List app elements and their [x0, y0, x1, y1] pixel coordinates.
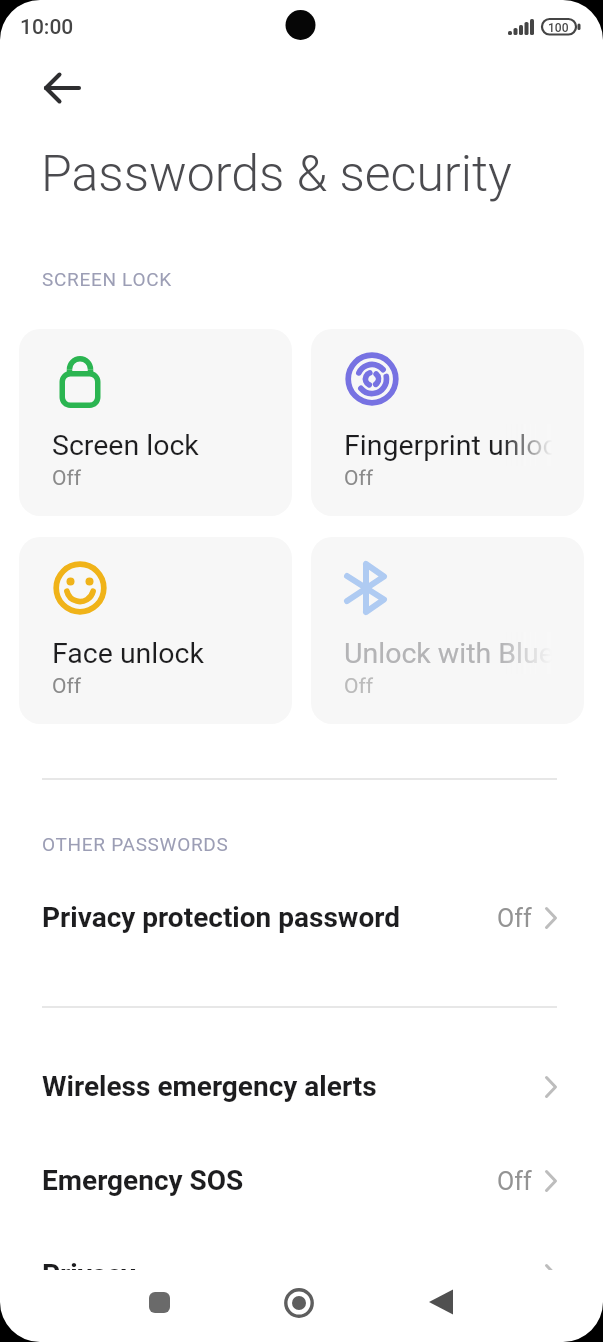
staticText: SCREEN LOCK: [42, 268, 172, 290]
staticText: Off: [344, 466, 374, 491]
staticText: Privacy protection password: [42, 901, 401, 934]
button[interactable]: Privacy: [0, 1230, 603, 1320]
button[interactable]: Wireless emergency alerts: [0, 1042, 603, 1132]
button[interactable]: Face unlock: [19, 537, 292, 724]
staticText: Off: [497, 1167, 532, 1196]
staticText: Unlock with Bluetooth device: [344, 637, 584, 670]
staticText: Emergency SOS: [42, 1164, 244, 1197]
staticText: Off: [52, 466, 82, 491]
staticText: Screen lock: [52, 429, 292, 462]
staticText: Off: [497, 904, 532, 933]
staticText: 10:00: [20, 15, 74, 40]
button[interactable]: Unlock with Bluetooth device: [311, 537, 584, 724]
staticText: Off: [52, 674, 82, 699]
staticText: OTHER PASSWORDS: [42, 833, 229, 855]
button[interactable]: Fingerprint unlock: [311, 329, 584, 516]
staticText: Privacy: [42, 1258, 136, 1291]
button[interactable]: [408, 1277, 472, 1329]
button[interactable]: Privacy protection password: [0, 873, 603, 963]
staticText: Passwords & security: [41, 145, 512, 204]
staticText: Face unlock: [52, 637, 292, 670]
staticText: Wireless emergency alerts: [42, 1070, 377, 1103]
button[interactable]: Emergency SOS: [0, 1136, 603, 1226]
button[interactable]: Screen lock: [19, 329, 292, 516]
button[interactable]: [127, 1280, 191, 1332]
staticText: Fingerprint unlock: [344, 429, 584, 462]
button[interactable]: [268, 1277, 332, 1335]
staticText: Off: [344, 674, 374, 699]
button[interactable]: [40, 66, 84, 110]
staticText: 100: [548, 21, 569, 35]
